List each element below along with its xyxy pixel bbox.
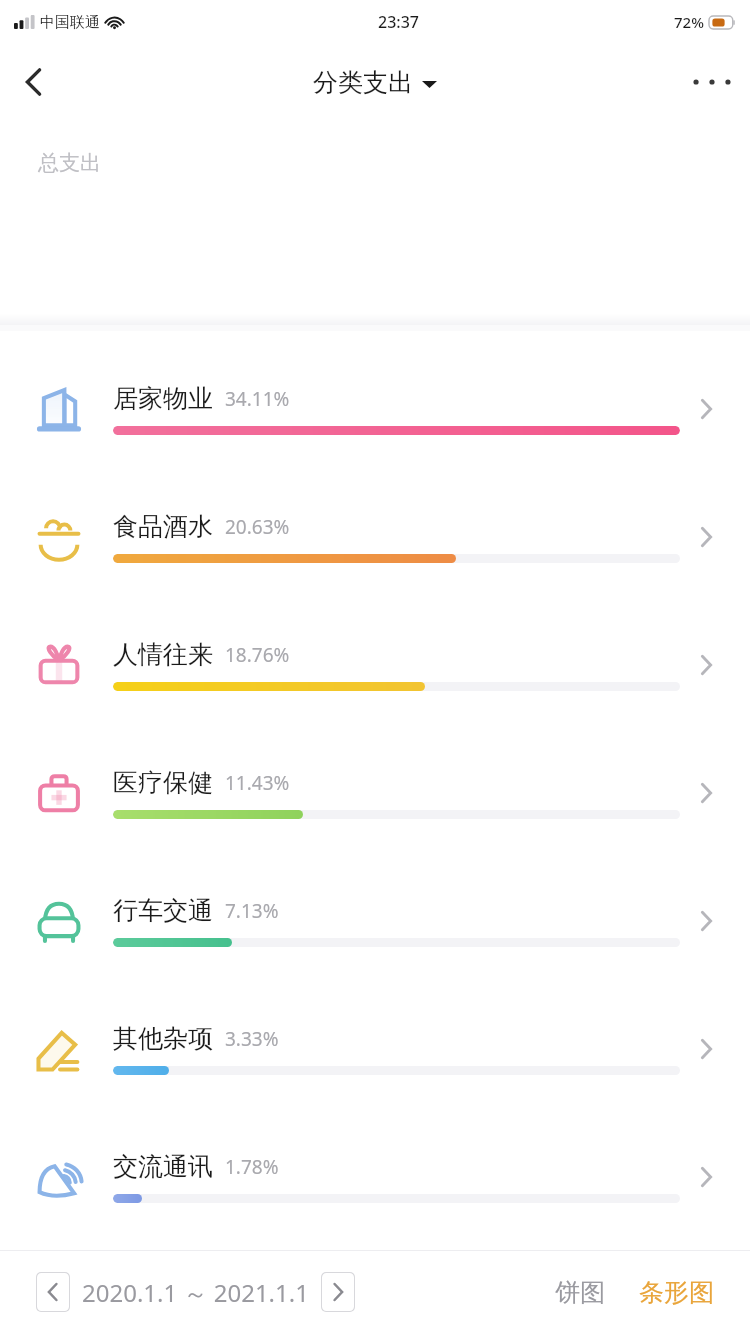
button[interactable]: 分类支出: [313, 67, 437, 98]
staticText: 饼图: [555, 1277, 605, 1308]
button[interactable]: 食品酒水: [0, 473, 750, 601]
staticText: 总支出: [38, 150, 101, 176]
staticText: 交流通讯: [113, 1151, 213, 1182]
button[interactable]: More options: [682, 52, 742, 112]
staticText: 7.13%: [225, 898, 279, 924]
button[interactable]: Back: [6, 54, 62, 110]
staticText: 分类支出: [313, 67, 413, 98]
button[interactable]: 人情往来: [0, 601, 750, 729]
button[interactable]: 医疗保健: [0, 729, 750, 857]
staticText: 医疗保健: [113, 767, 213, 798]
staticText: 34.11%: [225, 386, 290, 412]
staticText: 条形图: [639, 1277, 714, 1308]
staticText: 其他杂项: [113, 1023, 213, 1054]
staticText: 11.43%: [225, 770, 290, 796]
button[interactable]: 饼图: [545, 1269, 615, 1316]
staticText: 72%: [674, 12, 704, 32]
staticText: 1.78%: [225, 1154, 279, 1180]
staticText: 人情往来: [113, 639, 213, 670]
staticText: 3.33%: [225, 1026, 279, 1052]
button[interactable]: 条形图: [629, 1269, 724, 1316]
staticText: 食品酒水: [113, 511, 213, 542]
button[interactable]: 居家物业: [0, 345, 750, 473]
button[interactable]: Previous period: [36, 1272, 70, 1312]
staticText: 23:37: [378, 11, 419, 33]
staticText: 居家物业: [113, 383, 213, 414]
staticText: 2020.1.1 ～ 2021.1.1: [82, 1276, 309, 1309]
staticText: 20.63%: [225, 514, 290, 540]
button[interactable]: 其他杂项: [0, 985, 750, 1113]
button[interactable]: 交流通讯: [0, 1113, 750, 1241]
staticText: 行车交通: [113, 895, 213, 926]
staticText: 中国联通: [40, 13, 100, 32]
button[interactable]: 行车交通: [0, 857, 750, 985]
staticText: 18.76%: [225, 642, 290, 668]
button[interactable]: Next period: [321, 1272, 355, 1312]
